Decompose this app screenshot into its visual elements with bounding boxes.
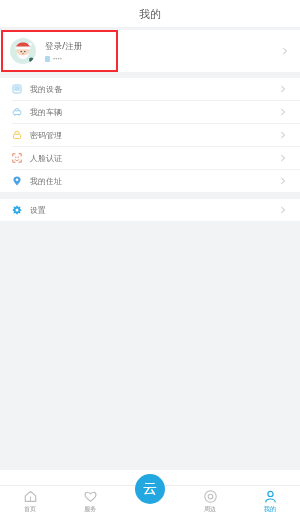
staticText: 首页 [24, 505, 36, 513]
staticText: 周边 [204, 505, 216, 513]
button[interactable]: 我的住址 [0, 170, 300, 192]
button[interactable]: 首页 [0, 485, 60, 517]
staticText: 我的 [264, 505, 276, 513]
staticText: 我的设备 [30, 84, 62, 94]
button[interactable]: 周边 [180, 485, 240, 517]
button[interactable]: 设置 [0, 199, 300, 221]
button[interactable]: 我的设备 [0, 78, 300, 100]
button[interactable]: 人脸认证 [0, 147, 300, 169]
staticText: 登录/注册 [45, 40, 83, 52]
button[interactable]: 我的车辆 [0, 101, 300, 123]
button[interactable]: 我的 [240, 485, 300, 517]
staticText: 人脸认证 [30, 153, 62, 163]
staticText: 设置 [30, 205, 46, 215]
staticText: 云 [143, 480, 157, 498]
staticText: 密码管理 [30, 130, 62, 140]
button[interactable]: 服务 [60, 485, 120, 517]
staticText: 我的 [139, 7, 161, 21]
button[interactable]: 云 [135, 474, 165, 504]
button[interactable]: 密码管理 [0, 124, 300, 146]
button[interactable]: 登录/注册 [0, 30, 300, 72]
staticText: •••• [53, 55, 63, 63]
staticText: 我的车辆 [30, 107, 62, 117]
staticText: 服务 [84, 505, 96, 513]
staticText: 我的住址 [30, 176, 62, 186]
